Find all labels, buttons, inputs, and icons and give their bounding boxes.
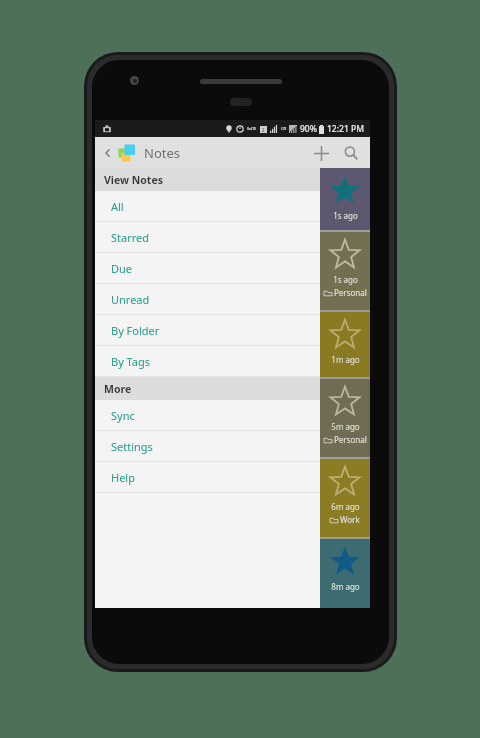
button[interactable]: By Folder <box>95 315 320 346</box>
button[interactable]: Navigate up <box>99 144 117 162</box>
staticText: LTE <box>281 127 287 131</box>
button[interactable]: 8m ago <box>320 539 370 608</box>
button[interactable]: Search <box>336 138 366 168</box>
button[interactable]: Add note <box>306 138 336 168</box>
button[interactable]: Help <box>95 462 320 493</box>
staticText: 8m ago <box>331 581 360 592</box>
button[interactable]: Starred <box>95 222 320 253</box>
staticText: More <box>104 382 132 396</box>
button[interactable]: 6m ago <box>320 459 370 537</box>
staticText: Settings <box>111 439 153 454</box>
staticText: By Folder <box>111 323 160 338</box>
staticText: 1s ago <box>333 210 358 221</box>
staticText: Unread <box>111 292 150 307</box>
staticText: Sync <box>111 408 135 423</box>
staticText: Starred <box>111 230 150 245</box>
button[interactable]: All <box>95 191 320 222</box>
button[interactable]: 1m ago <box>320 312 370 377</box>
staticText: VoLTE <box>247 127 257 131</box>
staticText: Work <box>340 514 360 525</box>
staticText: 2 <box>262 127 265 133</box>
staticText: 90% <box>300 123 317 135</box>
button[interactable]: 1s ago <box>320 168 370 230</box>
staticText: Due <box>111 261 133 276</box>
button[interactable]: 5m ago <box>320 379 370 457</box>
staticText: Notes <box>144 144 180 162</box>
staticText: 6m ago <box>331 501 360 512</box>
staticText: 1s ago <box>333 274 358 285</box>
button[interactable]: Unread <box>95 284 320 315</box>
staticText: 12:21 PM <box>327 123 364 135</box>
staticText: Help <box>111 470 135 485</box>
staticText: 5m ago <box>331 421 360 432</box>
button[interactable]: Sync <box>95 400 320 431</box>
button[interactable]: 1s ago <box>320 232 370 310</box>
staticText: All <box>111 199 124 214</box>
button[interactable]: By Tags <box>95 346 320 377</box>
staticText: Personal <box>334 434 367 445</box>
staticText: 1m ago <box>331 354 360 365</box>
staticText: View Notes <box>104 173 163 187</box>
button[interactable]: Due <box>95 253 320 284</box>
staticText: By Tags <box>111 354 151 369</box>
staticText: Personal <box>334 287 367 298</box>
button[interactable]: Settings <box>95 431 320 462</box>
